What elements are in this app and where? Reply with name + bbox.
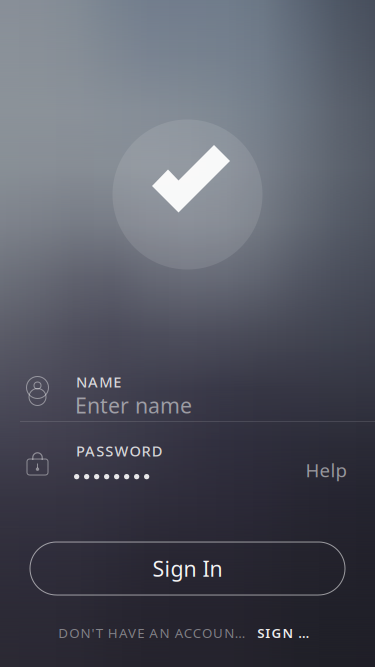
- staticText: Help: [305, 458, 346, 482]
- button[interactable]: NAME: [0, 355, 375, 421]
- button[interactable]: Sign In: [30, 542, 345, 595]
- button[interactable]: Help: [300, 450, 352, 490]
- staticText: NAME: [76, 372, 121, 391]
- staticText: SIGN UP: [257, 624, 317, 642]
- staticText: Enter name: [75, 391, 192, 419]
- staticText: PASSWORD: [76, 441, 163, 460]
- staticText: DON'T HAVE AN ACCOUNT?: [58, 624, 249, 642]
- button[interactable]: SIGN UP: [257, 624, 317, 642]
- staticText: Sign In: [152, 554, 222, 583]
- button[interactable]: PASSWORD: [0, 428, 300, 494]
